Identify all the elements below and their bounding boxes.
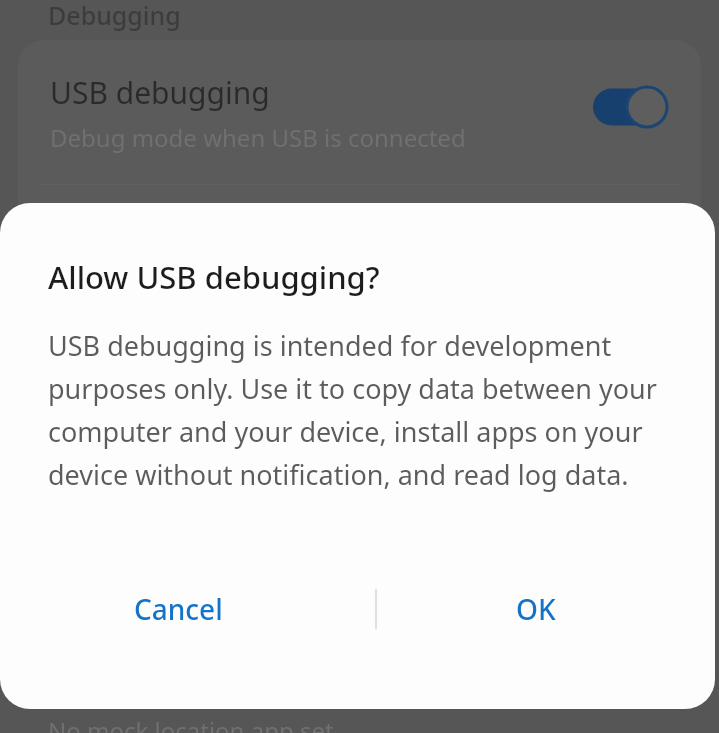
- staticText: Debug mode when USB is connected: [50, 121, 466, 154]
- staticText: USB debugging is intended for developmen…: [48, 327, 669, 493]
- staticText: Allow USB debugging?: [48, 256, 380, 298]
- button[interactable]: Cancel: [0, 562, 357, 656]
- staticText: No mock location app set: [48, 714, 334, 733]
- staticText: USB debugging: [50, 72, 270, 113]
- staticText: Debugging: [48, 0, 181, 32]
- staticText: Cancel: [134, 590, 223, 628]
- button[interactable]: USB debugging toggle: [591, 86, 669, 128]
- staticText: OK: [516, 590, 556, 628]
- button[interactable]: OK: [357, 562, 715, 656]
